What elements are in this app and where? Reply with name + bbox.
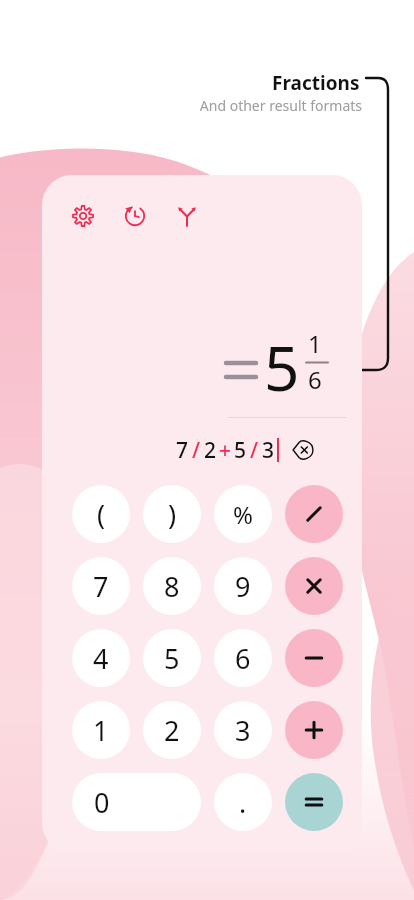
- button[interactable]: Equals: [285, 773, 343, 831]
- button[interactable]: ): [143, 485, 201, 543]
- staticText: +: [219, 436, 232, 465]
- staticText: 9: [235, 568, 251, 605]
- staticText: 2: [164, 712, 180, 749]
- staticText: 1: [308, 327, 322, 360]
- staticText: 8: [164, 568, 180, 605]
- button[interactable]: Settings: [68, 201, 98, 231]
- button[interactable]: History: [120, 201, 150, 231]
- staticText: 1: [93, 712, 109, 749]
- staticText: 7: [93, 568, 109, 605]
- button[interactable]: Minus: [285, 629, 343, 687]
- staticText: 6: [235, 640, 251, 677]
- button[interactable]: %: [214, 485, 272, 543]
- button[interactable]: 6: [214, 629, 272, 687]
- staticText: Fractions: [272, 70, 360, 96]
- button[interactable]: 0: [72, 773, 201, 831]
- staticText: 5: [164, 640, 180, 677]
- button[interactable]: Branch: [172, 201, 202, 231]
- button[interactable]: 7: [72, 557, 130, 615]
- button[interactable]: 2: [143, 701, 201, 759]
- staticText: %: [233, 498, 253, 531]
- button[interactable]: 8: [143, 557, 201, 615]
- staticText: 0: [94, 784, 110, 821]
- button[interactable]: Multiply: [285, 557, 343, 615]
- staticText: (: [97, 496, 106, 533]
- button[interactable]: .: [214, 773, 272, 831]
- staticText: 2: [204, 436, 217, 465]
- staticText: 5: [234, 436, 247, 465]
- button[interactable]: 3: [214, 701, 272, 759]
- button[interactable]: 4: [72, 629, 130, 687]
- button[interactable]: Divide: [285, 485, 343, 543]
- staticText: 3: [235, 712, 251, 749]
- button[interactable]: 1: [72, 701, 130, 759]
- button[interactable]: 9: [214, 557, 272, 615]
- staticText: /: [250, 436, 259, 465]
- staticText: And other result formats: [184, 96, 362, 900]
- staticText: 5: [264, 325, 300, 405]
- button[interactable]: 5: [143, 629, 201, 687]
- staticText: /: [192, 436, 201, 465]
- staticText: ): [168, 496, 177, 533]
- staticText: 4: [93, 640, 109, 677]
- staticText: 7: [176, 436, 189, 465]
- staticText: 6: [308, 363, 322, 396]
- staticText: .: [239, 784, 247, 821]
- staticText: 3: [262, 436, 275, 465]
- button[interactable]: Plus: [285, 701, 343, 759]
- button[interactable]: Backspace: [291, 438, 315, 462]
- button[interactable]: (: [72, 485, 130, 543]
